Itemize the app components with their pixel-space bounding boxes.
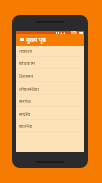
staticText: बांधकाम <box>19 59 35 66</box>
button[interactable]: सदस्य <box>16 107 84 120</box>
button[interactable]: बातम्या <box>16 119 84 132</box>
button[interactable]: सरपंच <box>16 94 84 107</box>
staticText: प्रशासन <box>19 72 34 79</box>
staticText: सरपंच <box>19 97 31 104</box>
button[interactable]: Open navigation menu <box>18 34 26 46</box>
button[interactable]: प्रशासन <box>16 69 84 82</box>
button[interactable]: लोकसंख्या <box>16 82 84 95</box>
staticText: लोकसंख्या <box>19 85 39 92</box>
staticText: 57% <box>71 31 77 34</box>
staticText: सदस्य <box>19 110 31 117</box>
button[interactable]: नकाशा <box>16 44 84 57</box>
staticText: नकाशा <box>19 47 33 54</box>
staticText: बातम्या <box>19 122 33 129</box>
staticText: मुख्य पृष्ठ <box>26 35 47 43</box>
button[interactable]: बांधकाम <box>16 56 84 69</box>
